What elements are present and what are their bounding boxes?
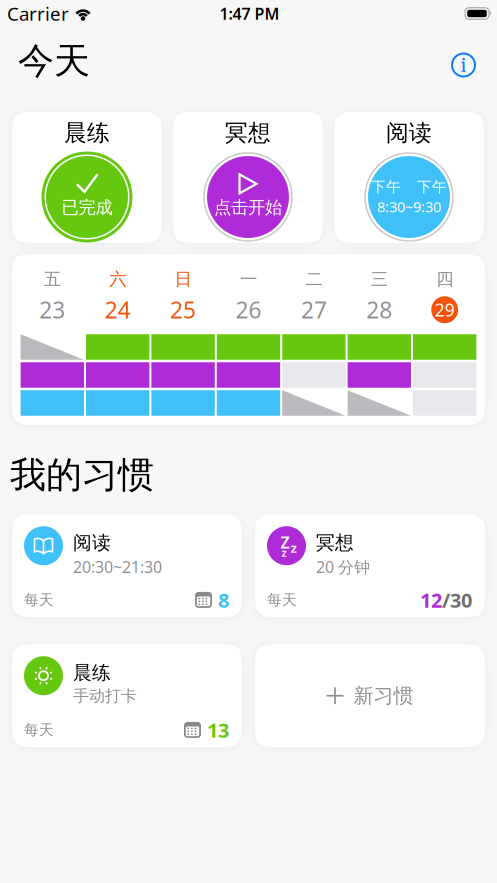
staticText: 已完成 xyxy=(61,197,112,218)
staticText: 今天 xyxy=(18,39,90,83)
button[interactable]: 晨练 xyxy=(12,644,242,747)
staticText: 29 xyxy=(435,298,455,321)
button[interactable]: 阅读 xyxy=(334,112,484,243)
staticText: 13 xyxy=(207,717,229,743)
button[interactable]: Z xyxy=(255,514,485,617)
staticText: 27 xyxy=(301,295,327,325)
staticText: 四 xyxy=(436,269,453,290)
staticText: Carrier xyxy=(7,1,69,26)
staticText: 冥想 xyxy=(225,119,271,147)
staticText: 下午 xyxy=(417,178,447,196)
staticText: 阅读 xyxy=(73,531,111,554)
staticText: 一 xyxy=(240,269,257,290)
staticText: 阅读 xyxy=(386,119,432,147)
staticText: 20:30~21:30 xyxy=(73,556,162,577)
staticText: 冥想 xyxy=(316,531,354,554)
staticText: /30 xyxy=(442,587,472,613)
staticText: 每天 xyxy=(24,591,54,609)
staticText: z xyxy=(281,546,286,560)
staticText: 我的习惯 xyxy=(10,453,154,497)
staticText: 12 xyxy=(420,587,442,613)
staticText: 手动打卡 xyxy=(73,686,137,706)
staticText: 8 xyxy=(218,587,229,613)
button[interactable]: 新习惯 xyxy=(255,644,485,747)
staticText: z xyxy=(290,539,296,556)
staticText: 点击开始 xyxy=(214,197,282,218)
staticText: 26 xyxy=(235,295,261,325)
button[interactable]: 冥想 xyxy=(173,112,323,243)
staticText: 25 xyxy=(170,295,196,325)
staticText: i xyxy=(460,53,466,79)
staticText: 六 xyxy=(109,269,126,290)
staticText: 新习惯 xyxy=(353,683,413,708)
staticText: 23 xyxy=(39,295,65,325)
staticText: 8:30~9:30 xyxy=(377,197,441,216)
staticText: 28 xyxy=(366,295,392,325)
button[interactable]: 阅读 xyxy=(12,514,242,617)
staticText: 晨练 xyxy=(73,661,111,684)
staticText: 三 xyxy=(371,269,388,290)
button[interactable]: 关于 xyxy=(451,44,497,77)
button[interactable]: 晨练 xyxy=(12,112,162,243)
staticText: 二 xyxy=(305,269,322,290)
staticText: 晨练 xyxy=(64,119,110,147)
staticText: 每天 xyxy=(267,591,297,609)
staticText: 下午 xyxy=(371,178,401,196)
staticText: 五 xyxy=(44,269,61,290)
staticText: 日 xyxy=(175,269,192,290)
staticText: 每天 xyxy=(24,721,54,739)
staticText: 24 xyxy=(105,295,131,325)
staticText: Z xyxy=(280,532,289,553)
staticText: 1:47 PM xyxy=(219,3,279,24)
staticText: 20 分钟 xyxy=(316,556,370,577)
